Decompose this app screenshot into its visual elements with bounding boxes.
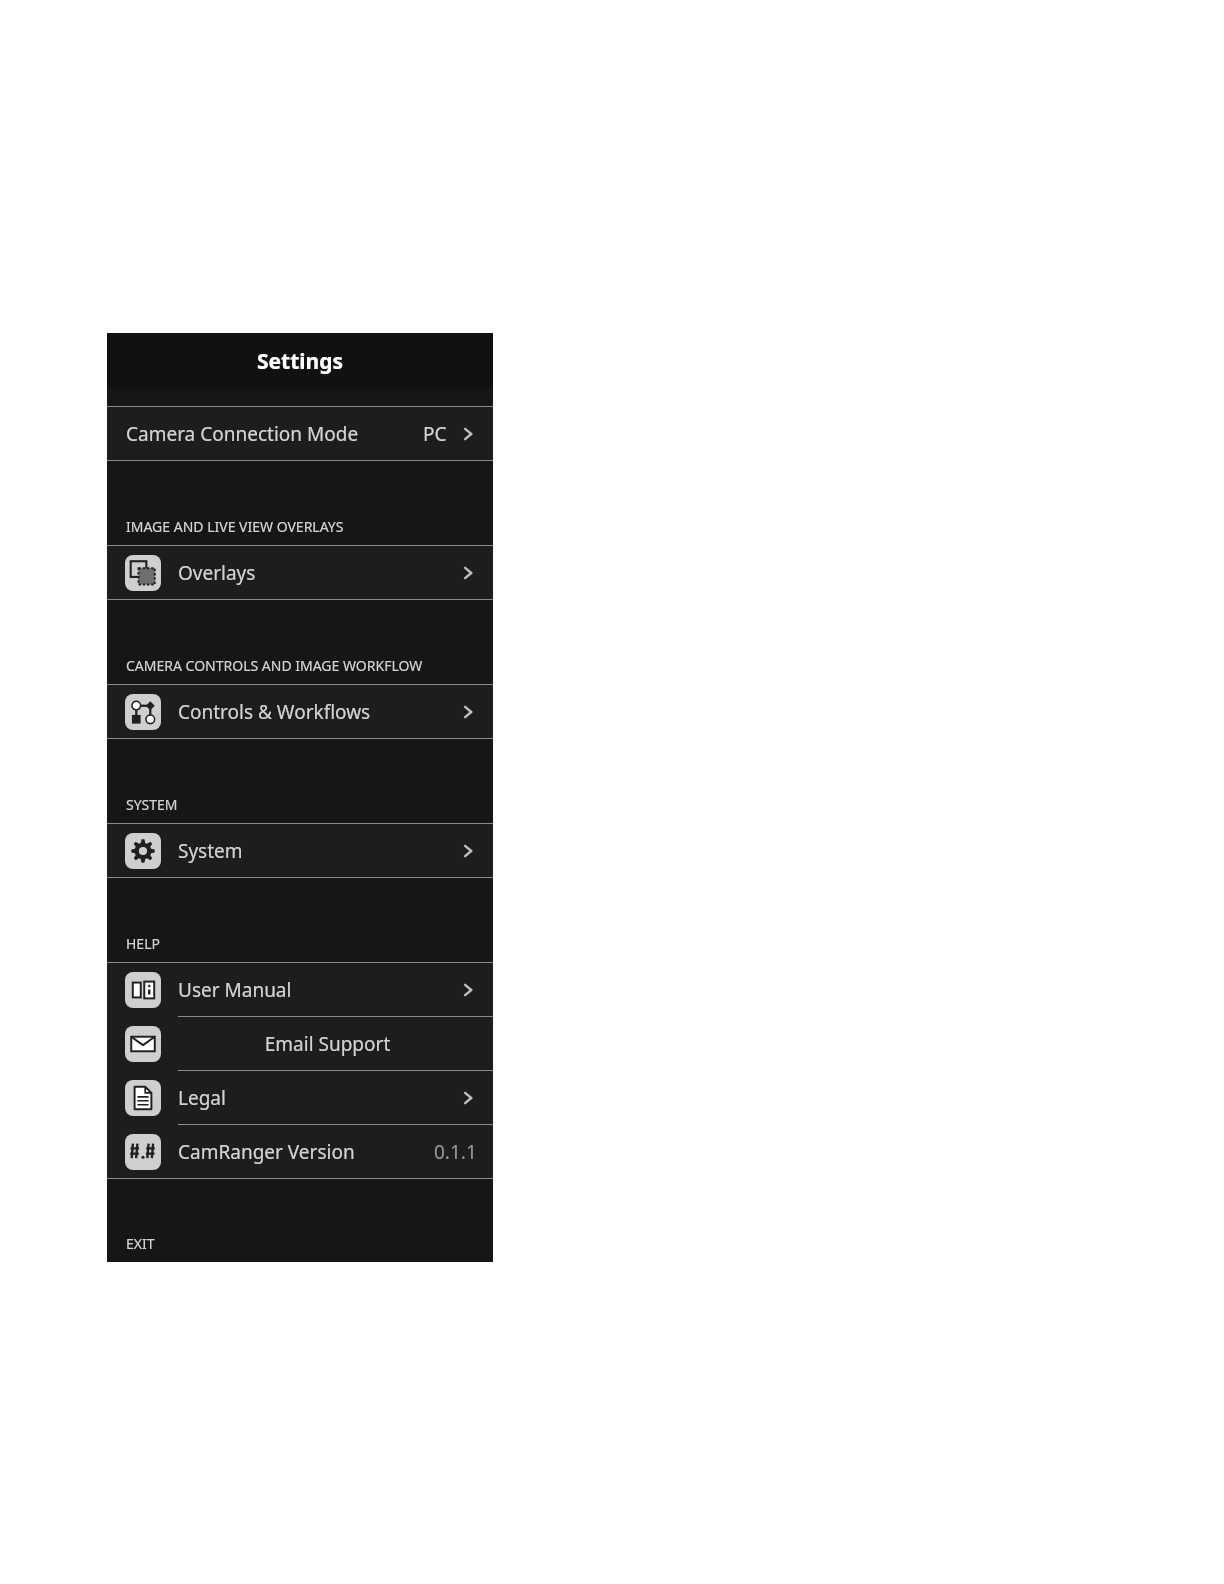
other: System settings	[125, 833, 161, 869]
other: CamRanger Version	[125, 1134, 161, 1170]
other: Email Support	[125, 1026, 161, 1062]
staticText: EXIT	[126, 1234, 155, 1253]
staticText: System	[178, 838, 243, 864]
button[interactable]: Controls and Workflows	[107, 685, 493, 738]
staticText: Camera Connection Mode	[126, 421, 359, 447]
staticText: Email Support	[178, 1031, 477, 1057]
staticText: Legal	[178, 1085, 226, 1111]
staticText: IMAGE AND LIVE VIEW OVERLAYS	[126, 517, 344, 536]
staticText: Controls & Workflows	[178, 699, 371, 725]
staticText: SYSTEM	[126, 795, 178, 814]
staticText: CamRanger Version	[178, 1139, 355, 1165]
button[interactable]: System settings	[107, 824, 493, 877]
button[interactable]: Legal	[107, 1071, 493, 1124]
button[interactable]: Camera Connection Mode	[107, 407, 493, 460]
staticText: CAMERA CONTROLS AND IMAGE WORKFLOW	[126, 656, 423, 675]
staticText: PC	[423, 421, 447, 447]
staticText: Overlays	[178, 560, 256, 586]
other: Controls and Workflows	[125, 694, 161, 730]
button[interactable]: User Manual	[107, 963, 493, 1016]
staticText: 0.1.1	[434, 1139, 477, 1165]
other: Overlays	[125, 555, 161, 591]
button[interactable]: Email Support	[107, 1017, 493, 1070]
other: User Manual	[125, 972, 161, 1008]
button[interactable]: CamRanger Version	[107, 1125, 493, 1178]
staticText: Settings	[257, 347, 344, 376]
other: Legal	[125, 1080, 161, 1116]
staticText: User Manual	[178, 977, 292, 1003]
staticText: HELP	[126, 934, 160, 953]
button[interactable]: Overlays	[107, 546, 493, 599]
